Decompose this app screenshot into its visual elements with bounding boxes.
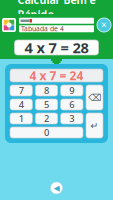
button[interactable]: Close — [97, 18, 111, 32]
button[interactable]: 5 — [35, 99, 58, 110]
staticText: ✕ — [100, 20, 107, 30]
staticText: 7 — [19, 84, 24, 97]
staticText: ◀ — [53, 183, 59, 193]
button[interactable]: Delete — [86, 85, 103, 110]
staticText: ↵ — [90, 120, 98, 131]
button[interactable]: 3 — [61, 113, 83, 124]
staticText: Tabuada de 4 — [21, 24, 64, 33]
staticText: Calcular Bem e Rápido — [17, 0, 95, 21]
button[interactable]: 7 — [10, 85, 32, 96]
staticText: 2 — [44, 112, 49, 125]
button[interactable]: Back — [50, 182, 62, 194]
button[interactable]: 2 — [35, 113, 58, 124]
button[interactable]: 8 — [35, 85, 58, 96]
staticText: 1 — [19, 112, 24, 125]
staticText: 6 — [69, 98, 74, 111]
button[interactable]: 1 — [10, 113, 32, 124]
staticText: 8 — [44, 84, 49, 97]
button[interactable]: 9 — [61, 85, 83, 96]
staticText: 0 — [44, 126, 49, 139]
staticText: 4 x 7 = 28 — [24, 38, 88, 57]
button[interactable]: 6 — [61, 99, 83, 110]
staticText: 4 x 7 = 24 — [29, 67, 83, 83]
button[interactable]: 4 — [10, 99, 32, 110]
staticText: ⌫ — [88, 92, 101, 103]
staticText: 4 — [19, 98, 24, 111]
button[interactable]: 0 — [10, 127, 83, 138]
staticText: 9 — [69, 84, 74, 97]
staticText: 5 — [44, 98, 49, 111]
staticText: 3 — [69, 112, 74, 125]
button[interactable]: Enter — [86, 113, 103, 138]
